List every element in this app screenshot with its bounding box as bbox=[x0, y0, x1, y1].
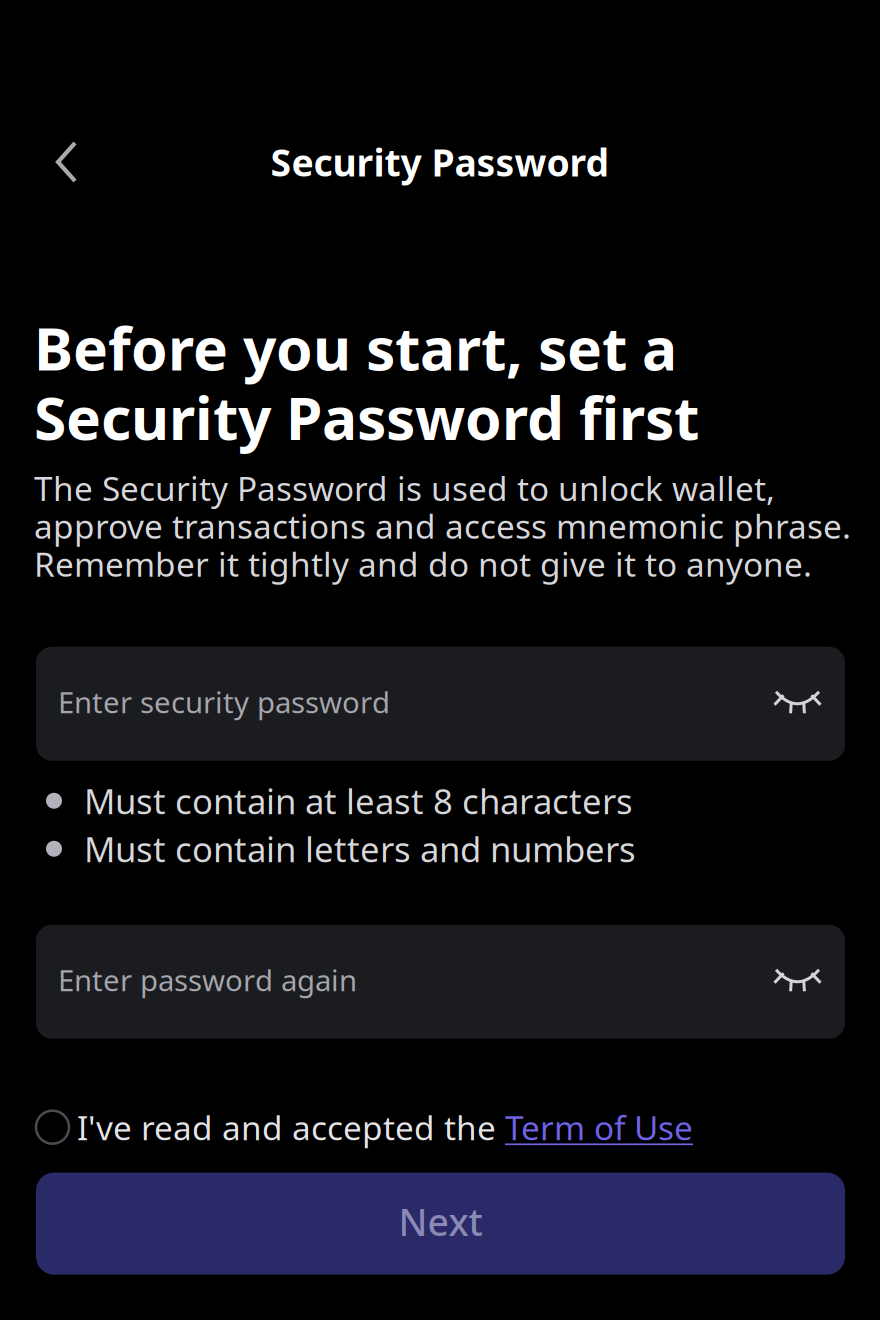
staticText: Must contain letters and numbers bbox=[84, 827, 636, 870]
staticText: The Security Password is used to unlock … bbox=[34, 469, 851, 583]
button[interactable]: Show password bbox=[750, 958, 821, 1006]
staticText: Enter security password bbox=[58, 684, 390, 720]
staticText: Security Password bbox=[270, 139, 609, 185]
staticText: Next bbox=[398, 1199, 482, 1244]
staticText: Term of Use bbox=[505, 1107, 693, 1148]
staticText: Must contain at least 8 characters bbox=[84, 779, 633, 822]
staticText: Before you start, set a Security Passwor… bbox=[34, 313, 699, 452]
button[interactable]: Show password bbox=[750, 680, 821, 728]
button[interactable]: Back bbox=[0, 128, 103, 196]
button[interactable]: Next bbox=[0, 1148, 880, 1275]
staticText: I've read and accepted the bbox=[77, 1107, 505, 1148]
button[interactable]: I've read and accepted the bbox=[0, 1039, 880, 1148]
staticText: Enter password again bbox=[58, 962, 357, 998]
